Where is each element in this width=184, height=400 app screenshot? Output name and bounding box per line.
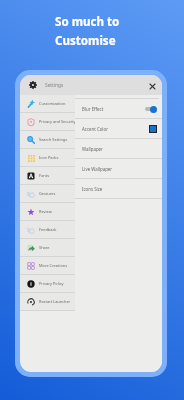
button[interactable]: Gestures — [20, 185, 75, 203]
button[interactable]: Restart Launcher — [20, 293, 75, 311]
staticText: Fonts — [39, 173, 50, 178]
button[interactable]: Blur Effect — [75, 99, 162, 119]
staticText: Customise — [55, 33, 116, 49]
button[interactable]: Privacy and Security — [20, 113, 75, 131]
button[interactable]: Review — [20, 203, 75, 221]
staticText: Search Settings — [39, 137, 68, 142]
staticText: So much to — [55, 14, 120, 30]
staticText: Customization — [39, 101, 66, 106]
button[interactable]: Customization — [20, 95, 75, 113]
staticText: Share — [39, 245, 50, 250]
staticText: Review — [39, 209, 52, 214]
staticText: Privacy Policy — [39, 281, 64, 286]
staticText: Restart Launcher — [39, 299, 71, 304]
button[interactable]: Icon Packs — [20, 149, 75, 167]
button[interactable]: More Creations — [20, 257, 75, 275]
staticText: Settings — [45, 82, 64, 89]
staticText: Privacy and Security — [39, 119, 75, 124]
staticText: Wallpaper — [82, 146, 103, 152]
button[interactable]: Accent Color — [75, 119, 162, 139]
button[interactable]: Icons Size — [75, 179, 162, 199]
staticText: Blur Effect — [82, 106, 104, 112]
button[interactable]: Search Settings — [20, 131, 75, 149]
button[interactable]: Privacy Policy — [20, 275, 75, 293]
button[interactable]: Close — [145, 78, 159, 92]
staticText: Feedback — [39, 227, 57, 232]
button[interactable]: Live Wallpaper — [75, 159, 162, 179]
staticText: Accent Color — [82, 126, 108, 132]
staticText: Icon Packs — [39, 155, 59, 160]
button[interactable]: Feedback — [20, 221, 75, 239]
staticText: Gestures — [39, 191, 56, 196]
button[interactable]: Wallpaper — [75, 139, 162, 159]
button[interactable]: Share — [20, 239, 75, 257]
staticText: Icons Size — [82, 186, 103, 192]
staticText: More Creations — [39, 263, 68, 268]
staticText: Live Wallpaper — [82, 166, 113, 172]
button[interactable]: Fonts — [20, 167, 75, 185]
